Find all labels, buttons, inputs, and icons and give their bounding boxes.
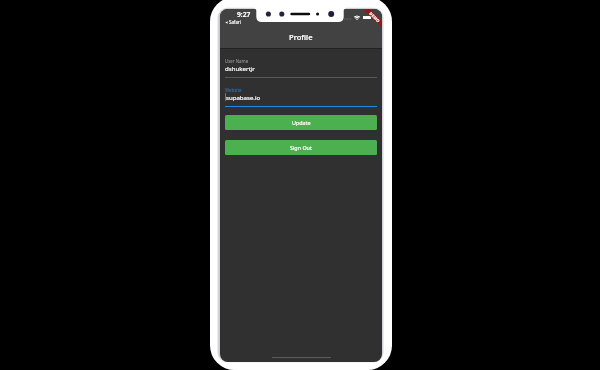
staticText: Update (292, 119, 311, 126)
staticText: Website (225, 87, 242, 93)
other: Wi-Fi (353, 15, 361, 20)
staticText: 9:27 (237, 10, 251, 19)
staticText: Sign Out (290, 144, 312, 151)
button[interactable]: Back to Safari (225, 19, 241, 25)
staticText: dshukertjr (225, 64, 255, 72)
staticText: User Name (225, 58, 249, 64)
button[interactable]: Update (225, 115, 377, 130)
staticText: supabase.io (226, 93, 261, 101)
button[interactable]: Sign Out (225, 140, 377, 155)
button[interactable]: User Name (225, 58, 377, 78)
staticText: DEMO (368, 11, 381, 24)
staticText: Profile (289, 32, 313, 42)
button[interactable]: Website (225, 87, 377, 107)
staticText: Safari (229, 19, 241, 25)
